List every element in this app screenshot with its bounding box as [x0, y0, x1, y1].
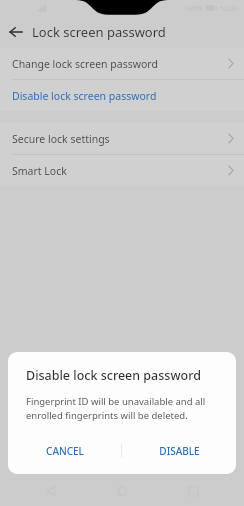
- button[interactable]: CANCEL: [8, 436, 121, 466]
- button[interactable]: Disable lock screen password: [0, 80, 244, 111]
- staticText: 100%: [184, 3, 204, 13]
- staticText: Change lock screen password: [12, 57, 158, 71]
- staticText: Disable lock screen password: [26, 367, 201, 384]
- staticText: Fingerprint ID will be unavailable and a…: [26, 395, 218, 422]
- button[interactable]: DISABLE: [122, 436, 236, 466]
- staticText: 10:00: [219, 3, 239, 13]
- staticText: Disable lock screen password: [12, 89, 157, 103]
- staticText: Lock screen password: [32, 23, 166, 41]
- staticText: Smart Lock: [12, 164, 67, 178]
- staticText: DISABLE: [159, 444, 200, 458]
- button[interactable]: Secure lock settings: [0, 123, 244, 154]
- button[interactable]: Smart Lock: [0, 155, 244, 186]
- staticText: CANCEL: [46, 444, 84, 458]
- staticText: Secure lock settings: [12, 132, 110, 146]
- button[interactable]: Back: [0, 16, 32, 48]
- button[interactable]: Change lock screen password: [0, 48, 244, 79]
